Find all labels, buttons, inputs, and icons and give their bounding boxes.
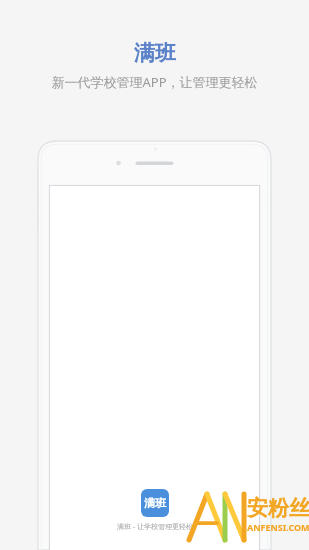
staticText: 满班 [134, 40, 176, 66]
staticText: ANFENSI.COM [247, 521, 309, 533]
button[interactable]: 满班 app icon [141, 489, 169, 517]
staticText: 满班 [144, 496, 166, 510]
staticText: 满班 - 让学校管理更轻松 [117, 522, 193, 532]
staticText: 安粉丝 [247, 495, 309, 521]
staticText: 新一代学校管理APP，让管理更轻松 [51, 73, 258, 91]
